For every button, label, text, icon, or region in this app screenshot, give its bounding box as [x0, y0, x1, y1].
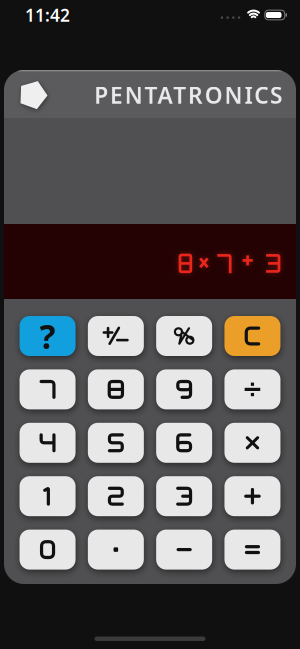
button[interactable]: Plus minus — [88, 316, 144, 356]
button[interactable]: 4 — [20, 423, 76, 463]
button[interactable]: 1 — [20, 476, 76, 516]
button[interactable]: 2 — [88, 476, 144, 516]
button[interactable]: Percent — [156, 316, 212, 356]
staticText: 11:42 — [25, 3, 70, 26]
button[interactable]: Help — [20, 316, 76, 356]
button[interactable]: Divide — [224, 369, 280, 409]
staticText: ? — [40, 314, 56, 358]
staticText: PENTATRONICS — [94, 80, 282, 110]
button[interactable]: Decimal point — [88, 530, 144, 570]
button[interactable]: 7 — [20, 369, 76, 409]
button[interactable]: 5 — [88, 423, 144, 463]
button[interactable]: 9 — [156, 369, 212, 409]
button[interactable]: Multiply — [224, 423, 280, 463]
button[interactable]: Clear — [224, 316, 280, 356]
button[interactable]: 6 — [156, 423, 212, 463]
button[interactable]: 0 — [20, 530, 76, 570]
button[interactable]: 3 — [156, 476, 212, 516]
button[interactable]: Minus — [156, 530, 212, 570]
button[interactable]: Equals — [224, 530, 280, 570]
button[interactable]: Plus — [224, 476, 280, 516]
button[interactable]: 8 — [88, 369, 144, 409]
